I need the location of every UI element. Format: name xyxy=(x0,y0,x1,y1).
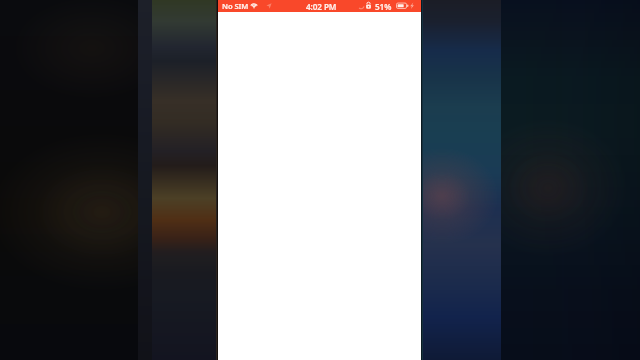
button[interactable]: App content xyxy=(218,0,421,360)
staticText: No SIM xyxy=(222,1,249,11)
staticText: 51% xyxy=(375,1,392,12)
staticText: 4:02 PM xyxy=(306,1,337,12)
button[interactable]: Status bar: No SIM, Wi-Fi, 4:02 PM, 51% … xyxy=(218,0,421,12)
